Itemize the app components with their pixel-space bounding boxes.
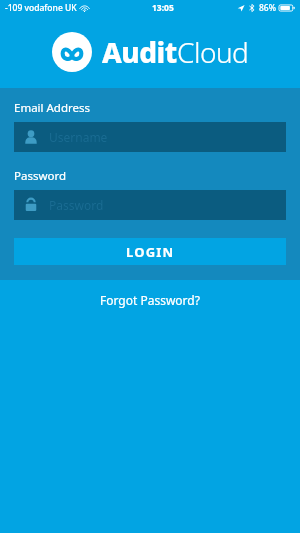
button[interactable]: Password xyxy=(14,190,286,220)
staticText: 86% xyxy=(259,2,276,14)
staticText: Password xyxy=(14,168,67,184)
staticText: -109 vodafone UK xyxy=(5,2,77,14)
staticText: 13:05 xyxy=(152,2,174,14)
staticText: Cloud xyxy=(177,33,249,71)
button[interactable]: LOGIN xyxy=(14,238,286,265)
staticText: Forgot Password? xyxy=(100,292,200,308)
button[interactable]: Forgot Password? xyxy=(100,292,200,308)
staticText: Password xyxy=(49,197,104,213)
staticText: Username xyxy=(49,129,108,145)
staticText: Email Address xyxy=(14,100,91,116)
staticText: Audit xyxy=(102,33,177,71)
button[interactable]: Username xyxy=(14,122,286,152)
staticText: LOGIN xyxy=(126,243,175,261)
